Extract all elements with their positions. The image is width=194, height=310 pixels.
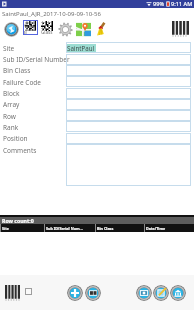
staticText: Row [3, 112, 16, 121]
button[interactable] [66, 99, 191, 110]
staticText: Bin Class [3, 66, 31, 75]
button[interactable] [66, 65, 191, 76]
button[interactable] [66, 121, 191, 132]
button[interactable]: Normal [23, 20, 38, 35]
staticText: Array [3, 100, 20, 109]
staticText: Sub ID/Serial Number [3, 55, 70, 64]
button[interactable]: Date/Time [144, 224, 194, 232]
staticText: Rank [3, 123, 19, 132]
button[interactable]: Add record [67, 285, 83, 301]
staticText: SaintPaul_AJR_2017-10-09-09-10-56 [2, 10, 101, 18]
staticText: 9:11 AM [171, 0, 193, 8]
button[interactable] [66, 110, 191, 121]
button[interactable]: Toggle [25, 288, 32, 295]
staticText: Row count:0 [2, 217, 34, 224]
button[interactable]: Sub ID/Serial Num... [44, 224, 95, 232]
staticText: Bin Class [97, 226, 114, 231]
staticText: Block [3, 89, 20, 98]
button[interactable]: Camera [136, 285, 152, 301]
staticText: Sub ID/Serial Num... [46, 226, 83, 231]
staticText: Glass [41, 29, 53, 35]
button[interactable]: Glass [40, 20, 54, 35]
button[interactable] [66, 54, 191, 65]
staticText: 99% [153, 0, 165, 8]
button[interactable] [66, 133, 191, 144]
button[interactable]: Edit [153, 285, 169, 301]
staticText: Failure Code [3, 78, 42, 87]
button[interactable] [66, 76, 191, 87]
button[interactable]: Map [76, 22, 91, 37]
button[interactable]: Scan barcode [5, 285, 20, 301]
staticText: Normal [23, 23, 38, 35]
staticText: SaintPaul [67, 44, 95, 52]
button[interactable]: Scan [4, 22, 19, 37]
button[interactable] [66, 144, 191, 186]
button[interactable]: Site [0, 224, 44, 232]
button[interactable]: Upload [170, 285, 186, 301]
button[interactable]: Open book [85, 285, 101, 301]
button[interactable]: Clear [94, 22, 108, 36]
button[interactable]: SaintPaul [66, 42, 191, 53]
staticText: Site [3, 44, 15, 53]
button[interactable]: Barcode [172, 21, 189, 37]
staticText: Comments [3, 146, 37, 155]
staticText: Site [2, 226, 9, 231]
button[interactable]: Bin Class [95, 224, 144, 232]
staticText: Date/Time [146, 226, 166, 231]
staticText: Position [3, 134, 28, 143]
button[interactable]: Settings [58, 22, 73, 37]
button[interactable] [66, 88, 191, 99]
